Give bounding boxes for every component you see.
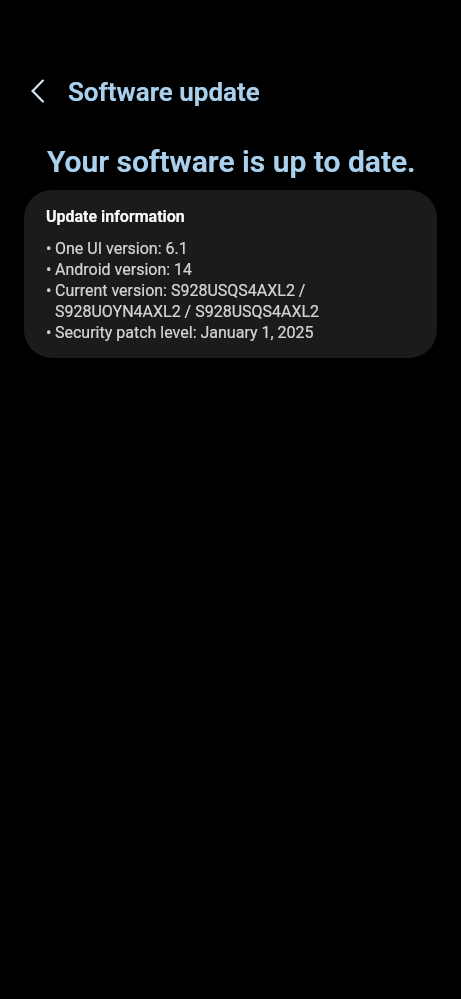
staticText: • xyxy=(46,258,55,279)
staticText: Android version: 14 xyxy=(55,258,193,279)
staticText: Security patch level: January 1, 2025 xyxy=(55,321,314,342)
staticText: Update information xyxy=(46,206,185,226)
staticText: Current version: S928USQS4AXL2 / S928UOY… xyxy=(55,279,320,321)
staticText: Software update xyxy=(68,77,260,107)
button[interactable]: Navigate up xyxy=(21,71,55,111)
staticText: Your software is up to date. xyxy=(47,143,416,179)
staticText: • xyxy=(46,237,55,258)
staticText: • xyxy=(46,321,55,342)
staticText: One UI version: 6.1 xyxy=(55,237,188,258)
staticText: • xyxy=(46,279,55,300)
